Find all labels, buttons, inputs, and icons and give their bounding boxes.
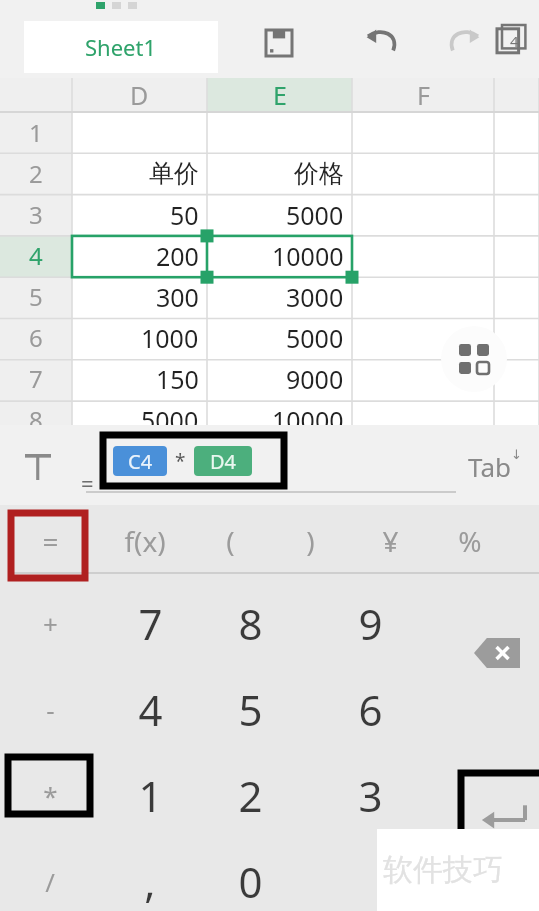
staticText: D4	[210, 448, 237, 475]
staticText: 50	[170, 198, 199, 232]
staticText: 2	[29, 157, 43, 190]
staticText: E	[273, 78, 287, 112]
staticText: 300	[156, 280, 199, 314]
button[interactable]: )	[270, 505, 350, 577]
staticText: 5	[238, 681, 263, 738]
button[interactable]: ,	[100, 838, 200, 911]
button[interactable]: ¥	[350, 505, 430, 577]
staticText: ,	[144, 853, 156, 910]
staticText: 1	[29, 116, 43, 149]
staticText: 单价	[149, 158, 199, 189]
button[interactable]: 3	[320, 752, 420, 838]
button[interactable]: Tab	[462, 443, 528, 489]
staticText: 7	[138, 595, 163, 652]
staticText: 9000	[286, 362, 344, 396]
button[interactable]: Tools	[441, 326, 507, 392]
staticText: +	[43, 606, 58, 641]
button[interactable]: C4	[103, 435, 284, 486]
button[interactable]: =	[0, 505, 100, 577]
staticText: 9	[358, 595, 383, 652]
staticText: 5000	[141, 403, 199, 437]
staticText: ↓	[511, 447, 522, 462]
button[interactable]: 9	[320, 580, 420, 666]
staticText: 8	[238, 595, 263, 652]
staticText: F	[417, 78, 430, 112]
staticText: *	[43, 778, 58, 813]
button[interactable]: F	[352, 78, 494, 112]
staticText: 7	[29, 362, 43, 395]
button[interactable]: 10000	[207, 235, 344, 276]
staticText: 2	[238, 767, 263, 824]
staticText: 10000	[272, 403, 344, 437]
staticText: ¥	[382, 522, 399, 560]
staticText: 5000	[286, 321, 344, 355]
button[interactable]: 5000	[207, 194, 344, 235]
button[interactable]: Sheet1	[24, 21, 218, 73]
button[interactable]: 300	[72, 276, 199, 317]
button[interactable]	[72, 112, 199, 153]
button[interactable]: 150	[72, 358, 199, 399]
button[interactable]: Save	[252, 16, 306, 70]
staticText: 4	[138, 681, 163, 738]
staticText: 1000	[141, 321, 199, 355]
button[interactable]: Text format	[14, 443, 62, 491]
button[interactable]: 3000	[207, 276, 344, 317]
staticText: f(x)	[124, 522, 166, 560]
staticText: 6	[29, 321, 43, 354]
button[interactable]: 2	[200, 752, 300, 838]
staticText: 200	[156, 239, 199, 273]
button[interactable]: 4	[100, 666, 200, 752]
button[interactable]: 0	[200, 838, 300, 911]
button[interactable]: Backspace	[455, 623, 539, 683]
staticText: /	[45, 864, 55, 899]
staticText: 0	[238, 853, 263, 910]
button[interactable]: (	[190, 505, 270, 577]
staticText: 软件技巧	[383, 851, 503, 889]
staticText: 150	[156, 362, 199, 396]
staticText: 3000	[286, 280, 344, 314]
button[interactable]: Sheets	[486, 14, 536, 64]
button[interactable]: D	[72, 78, 207, 112]
staticText: 价格	[294, 158, 344, 189]
button[interactable]: 8	[200, 580, 300, 666]
button[interactable]: +	[0, 580, 100, 666]
button[interactable]: 1	[100, 752, 200, 838]
staticText: 5	[29, 280, 43, 313]
staticText: (	[226, 522, 235, 560]
staticText: -	[46, 692, 55, 727]
button[interactable]: 9000	[207, 358, 344, 399]
button[interactable]: E	[207, 78, 352, 112]
button[interactable]: Enter	[461, 773, 539, 849]
button[interactable]: %	[430, 505, 510, 577]
button[interactable]: 5	[200, 666, 300, 752]
button[interactable]: 6	[320, 666, 420, 752]
button[interactable]: 10000	[207, 399, 344, 440]
button[interactable]: /	[0, 838, 100, 911]
staticText: )	[306, 522, 315, 560]
staticText: *	[175, 448, 186, 474]
staticText: %	[458, 522, 482, 560]
button[interactable]: 1000	[72, 317, 199, 358]
staticText: C4	[128, 448, 153, 475]
staticText: Sheet1	[85, 32, 157, 62]
button[interactable]: 5000	[207, 317, 344, 358]
staticText: 4	[29, 239, 43, 272]
button[interactable]: 200	[72, 235, 199, 276]
button[interactable]: 7	[100, 580, 200, 666]
button[interactable]: Redo	[436, 16, 490, 70]
button[interactable]: 单价	[72, 153, 199, 194]
staticText: =	[81, 468, 94, 498]
button[interactable]: *	[0, 752, 100, 838]
button[interactable]: 5000	[72, 399, 199, 440]
button[interactable]	[207, 112, 344, 153]
button[interactable]: Undo	[356, 16, 410, 70]
staticText: =	[42, 522, 59, 560]
staticText: 3	[29, 198, 43, 231]
button[interactable]: 50	[72, 194, 199, 235]
button[interactable]: f(x)	[100, 505, 190, 577]
staticText: 1	[138, 767, 163, 824]
staticText: 10000	[272, 239, 344, 273]
staticText: 5000	[286, 198, 344, 232]
button[interactable]: 价格	[207, 153, 344, 194]
